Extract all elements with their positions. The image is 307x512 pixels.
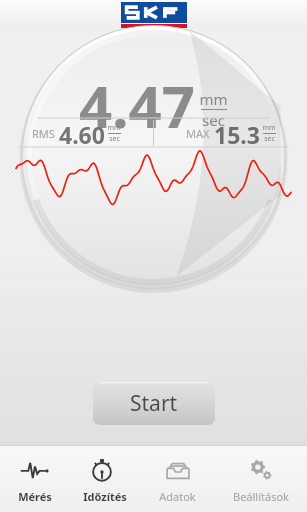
- staticText: 4.60: [59, 119, 105, 147]
- button[interactable]: Start: [93, 381, 215, 425]
- staticText: MAX: [186, 126, 210, 141]
- other: SKF logo: [121, 2, 187, 28]
- staticText: Időzítés: [83, 489, 127, 504]
- staticText: sec: [202, 110, 225, 130]
- staticText: Beállítások: [233, 489, 289, 504]
- staticText: Mérés: [18, 489, 52, 504]
- staticText: Adatok: [159, 489, 196, 504]
- staticText: RMS: [32, 126, 55, 141]
- button[interactable]: Adatok: [140, 449, 215, 510]
- button[interactable]: Időzítés: [70, 449, 140, 510]
- staticText: 15.3: [214, 119, 260, 147]
- button[interactable]: Mérés: [0, 449, 70, 510]
- button[interactable]: Beállítások: [215, 449, 307, 510]
- staticText: mm: [107, 123, 121, 133]
- staticText: Start: [130, 389, 178, 418]
- staticText: mm: [199, 89, 228, 109]
- staticText: 4.47: [79, 66, 195, 145]
- staticText: mm: [262, 123, 276, 133]
- staticText: sec: [264, 134, 275, 144]
- staticText: sec: [109, 134, 120, 144]
